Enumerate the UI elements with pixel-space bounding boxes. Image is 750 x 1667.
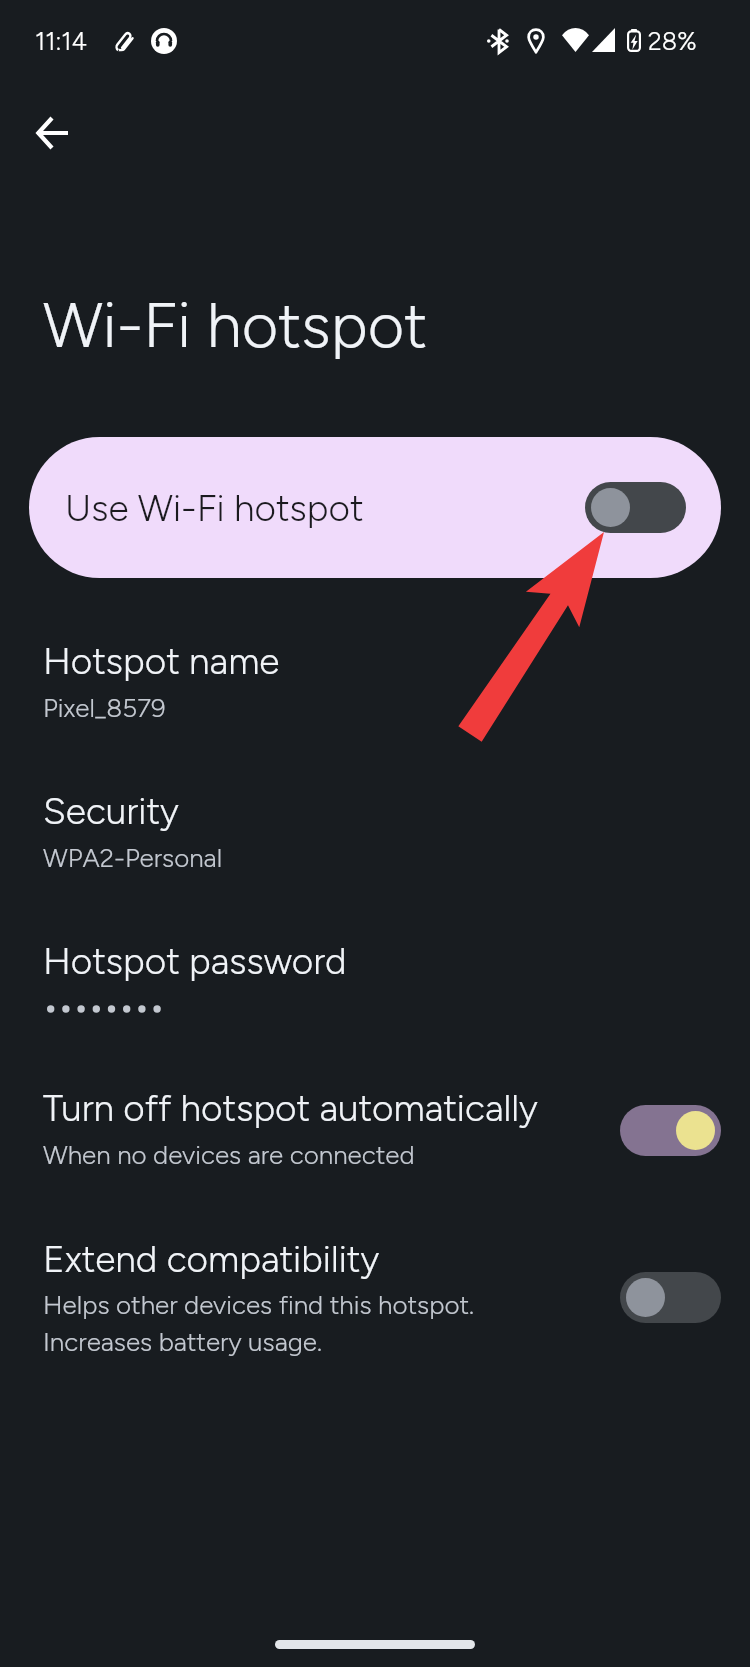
button[interactable]: Hotspot name (0, 618, 750, 748)
button[interactable]: Security (0, 768, 750, 898)
staticText: Hotspot password (43, 939, 347, 983)
staticText: Pixel_8579 (43, 692, 166, 723)
button[interactable]: Hotspot password (0, 918, 750, 1048)
staticText: Extend compatibility (43, 1237, 380, 1281)
button[interactable]: Switch off (585, 482, 686, 533)
staticText: Turn off hotspot automatically (43, 1086, 538, 1130)
button[interactable]: Switch on (620, 1105, 721, 1156)
button[interactable]: Switch off (620, 1272, 721, 1323)
button[interactable]: Use Wi-Fi hotspot (29, 437, 721, 578)
staticText: When no devices are connected (43, 1139, 415, 1170)
staticText: 11:14 (35, 26, 88, 56)
staticText: 28% (648, 26, 697, 56)
staticText: WPA2-Personal (43, 842, 223, 873)
staticText: Increases battery usage. (43, 1326, 322, 1357)
staticText: Helps other devices find this hotspot. (43, 1289, 475, 1320)
button[interactable]: Extend compatibility (0, 1216, 750, 1376)
staticText: Wi-Fi hotspot (43, 287, 428, 363)
staticText: Hotspot name (43, 639, 280, 683)
button[interactable]: Back (28, 109, 76, 157)
staticText: Security (43, 789, 179, 833)
button[interactable]: Turn off hotspot automatically (0, 1065, 750, 1205)
staticText: Use Wi-Fi hotspot (65, 486, 364, 530)
